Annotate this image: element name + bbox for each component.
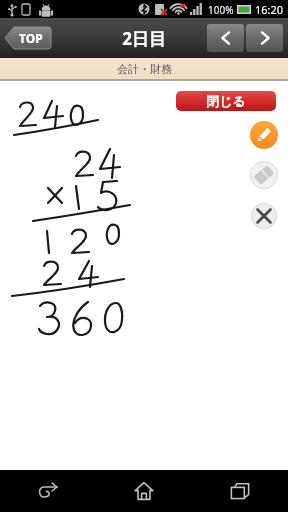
button[interactable]: Pen <box>250 121 278 149</box>
button[interactable]: Back <box>0 470 96 512</box>
staticText: 100% <box>208 3 234 17</box>
button[interactable]: Previous <box>207 24 244 52</box>
button[interactable]: Clear <box>251 203 277 229</box>
button[interactable]: Eraser <box>250 161 278 189</box>
button[interactable]: Home <box>96 470 192 512</box>
button[interactable]: 閉じる <box>176 91 276 111</box>
button[interactable]: Recent apps <box>192 470 288 512</box>
staticText: TOP <box>19 30 43 46</box>
staticText: 16:20 <box>255 2 284 17</box>
button[interactable]: Next <box>246 24 283 52</box>
staticText: 2日目 <box>122 27 166 50</box>
staticText: 閉じる <box>206 93 246 109</box>
button[interactable]: TOP <box>5 25 51 51</box>
staticText: 会計・財務 <box>117 62 172 76</box>
